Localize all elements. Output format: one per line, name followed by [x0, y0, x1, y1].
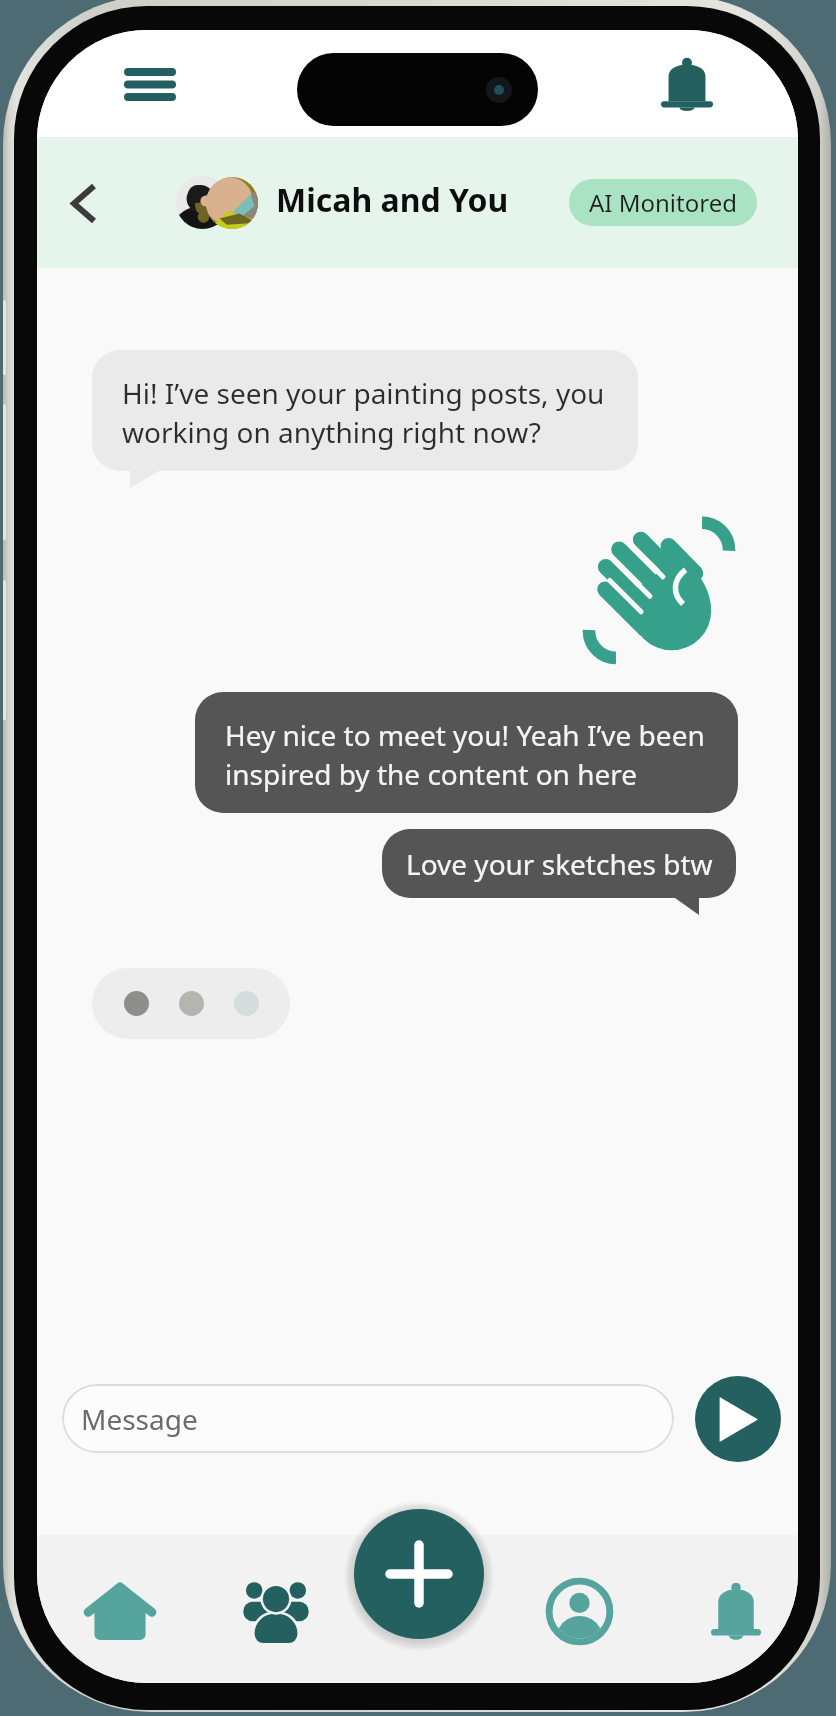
staticText: Hey nice to meet you! Yeah I’ve been ins… — [225, 716, 722, 793]
button[interactable]: Groups — [204, 1551, 348, 1667]
button[interactable]: Send — [695, 1376, 781, 1462]
staticText: Message — [81, 1400, 198, 1438]
button[interactable]: Hey nice to meet you! Yeah I’ve been ins… — [195, 692, 738, 813]
button[interactable]: Add — [354, 1509, 484, 1639]
staticText: Hi! I’ve seen your painting posts, you w… — [122, 374, 622, 451]
staticText: Micah and You — [276, 178, 509, 222]
button[interactable]: Message — [62, 1384, 674, 1453]
staticText: AI Monitored — [589, 186, 737, 219]
button[interactable]: Hi! I’ve seen your painting posts, you w… — [92, 350, 638, 471]
button[interactable]: Back — [51, 170, 117, 236]
staticText: Love your sketches btw — [406, 845, 713, 883]
button[interactable]: AI Monitored — [569, 179, 757, 226]
button[interactable]: Menu — [116, 50, 184, 118]
button[interactable]: Notifications — [649, 48, 725, 124]
button[interactable]: Love your sketches btw — [382, 829, 736, 898]
button[interactable]: Alerts — [664, 1554, 798, 1670]
button[interactable]: Home — [48, 1553, 192, 1669]
button[interactable]: Profile — [507, 1553, 651, 1669]
